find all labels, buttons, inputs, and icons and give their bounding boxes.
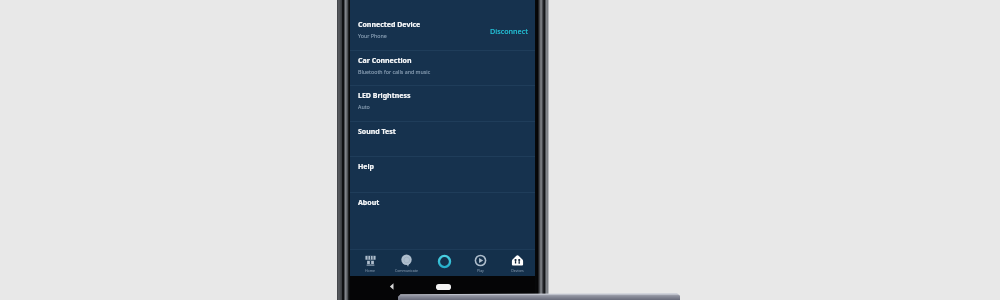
staticText: Play <box>477 268 484 273</box>
staticText: Sound Test <box>358 127 396 137</box>
staticText: Bluetooth for calls and music <box>358 68 431 75</box>
button[interactable]: Disconnect <box>490 26 535 36</box>
button[interactable]: Sound Test <box>350 118 535 154</box>
button[interactable]: Alexa <box>427 249 461 276</box>
button[interactable]: Car Connection <box>350 47 535 83</box>
staticText: Auto <box>358 103 370 110</box>
button[interactable]: Help <box>350 153 535 189</box>
other: Back <box>350 276 535 300</box>
staticText: Your Phone <box>358 32 387 39</box>
staticText: Home <box>365 268 375 273</box>
button[interactable]: LED Brightness <box>350 82 535 118</box>
staticText: Connected Device <box>358 20 421 30</box>
button[interactable]: Devices <box>500 249 534 276</box>
button[interactable]: About <box>350 189 535 225</box>
staticText: Car Connection <box>358 56 412 66</box>
staticText: Communicate <box>395 268 418 273</box>
staticText: Help <box>358 162 375 172</box>
button[interactable]: Communicate <box>389 249 423 276</box>
button[interactable]: Connected Device <box>350 11 535 47</box>
staticText: Devices <box>511 268 524 273</box>
button[interactable]: Play <box>463 249 497 276</box>
staticText: LED Brightness <box>358 91 411 101</box>
button[interactable]: Home <box>353 249 387 276</box>
staticText: About <box>358 198 380 208</box>
